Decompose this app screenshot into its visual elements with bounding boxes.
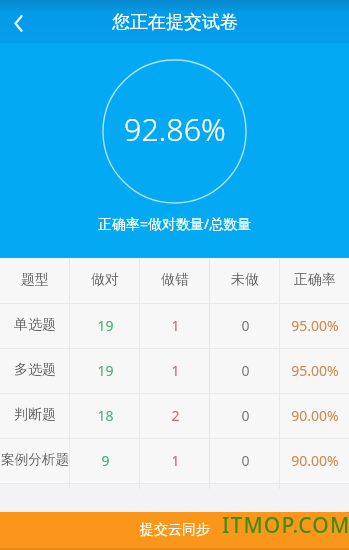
staticText: 90.00% (291, 451, 339, 470)
staticText: 您正在提交试卷 (112, 11, 238, 34)
staticText: 0 (241, 451, 250, 470)
button[interactable]: 提交云同步 (0, 512, 349, 550)
staticText: 0 (241, 361, 250, 380)
staticText: 90.00% (291, 406, 339, 425)
staticText: 92.86% (124, 108, 226, 150)
staticText: 未做 (231, 271, 259, 289)
staticText: 1 (171, 361, 180, 380)
staticText: 19 (97, 316, 114, 335)
staticText: 2 (171, 406, 180, 425)
staticText: 单选题 (14, 316, 56, 334)
staticText: 做错 (161, 271, 189, 289)
staticText: 18 (97, 406, 114, 425)
staticText: 判断题 (14, 406, 56, 424)
staticText: 9 (101, 451, 110, 470)
button[interactable]: Back (0, 1, 42, 43)
staticText: 0 (241, 316, 250, 335)
staticText: 多选题 (14, 361, 56, 379)
staticText: 1 (171, 316, 180, 335)
staticText: 做对 (91, 271, 119, 289)
staticText: 1 (171, 451, 180, 470)
staticText: 案例分析题 (1, 451, 69, 468)
staticText: 提交云同步 (140, 521, 210, 539)
staticText: 正确率=做对数量/总数量 (98, 214, 252, 233)
staticText: ITMOP.COM (222, 511, 349, 540)
staticText: 0 (241, 406, 250, 425)
staticText: 95.00% (291, 361, 339, 380)
staticText: 95.00% (291, 316, 339, 335)
staticText: 题型 (21, 271, 49, 289)
staticText: 正确率 (294, 271, 336, 289)
staticText: 19 (97, 361, 114, 380)
